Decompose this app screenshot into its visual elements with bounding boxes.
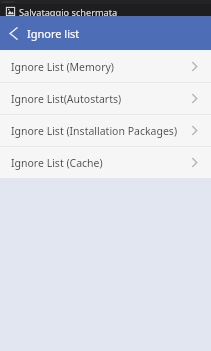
staticText: Salvataggio schermata	[19, 6, 118, 16]
button[interactable]: Ignore List (Cache)	[0, 146, 211, 178]
staticText: Ignore list	[27, 26, 80, 41]
button[interactable]: Ignore List (Installation Packages)	[0, 114, 211, 146]
staticText: Ignore List (Cache)	[11, 156, 189, 170]
staticText: Ignore List (Installation Packages)	[11, 124, 189, 138]
button[interactable]: Ignore List(Autostarts)	[0, 82, 211, 114]
button[interactable]: Ignore List (Memory)	[0, 50, 211, 82]
button[interactable]: Back	[0, 16, 27, 50]
staticText: Ignore List(Autostarts)	[11, 92, 189, 106]
staticText: Ignore List (Memory)	[11, 60, 189, 74]
